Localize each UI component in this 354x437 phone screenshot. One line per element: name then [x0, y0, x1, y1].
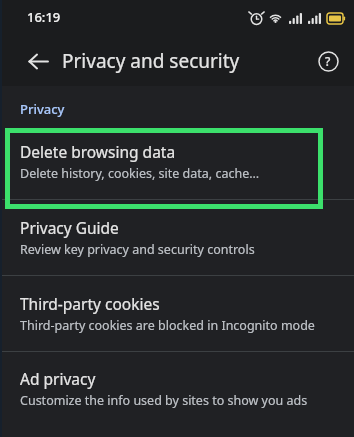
staticText: ? — [325, 53, 331, 69]
staticText: Privacy and security — [62, 48, 240, 74]
button[interactable]: Privacy Guide — [0, 200, 354, 275]
staticText: Privacy Guide — [20, 217, 119, 238]
staticText: Customize the info used by sites to show… — [20, 392, 308, 409]
staticText: Privacy — [20, 100, 65, 118]
staticText: Third-party cookies — [20, 293, 160, 314]
button[interactable]: Help — [306, 39, 350, 83]
staticText: Delete history, cookies, site data, cach… — [20, 165, 260, 182]
staticText: Third-party cookies are blocked in Incog… — [20, 317, 315, 334]
button[interactable]: Ad privacy — [0, 352, 354, 425]
staticText: 16:19 — [27, 8, 61, 26]
staticText: Review key privacy and security controls — [20, 241, 255, 258]
button[interactable]: Third-party cookies — [0, 276, 354, 351]
staticText: Delete browsing data — [20, 141, 176, 162]
staticText: Ad privacy — [20, 368, 96, 389]
button[interactable]: Back — [16, 39, 60, 83]
button[interactable]: Delete browsing data — [0, 123, 354, 199]
